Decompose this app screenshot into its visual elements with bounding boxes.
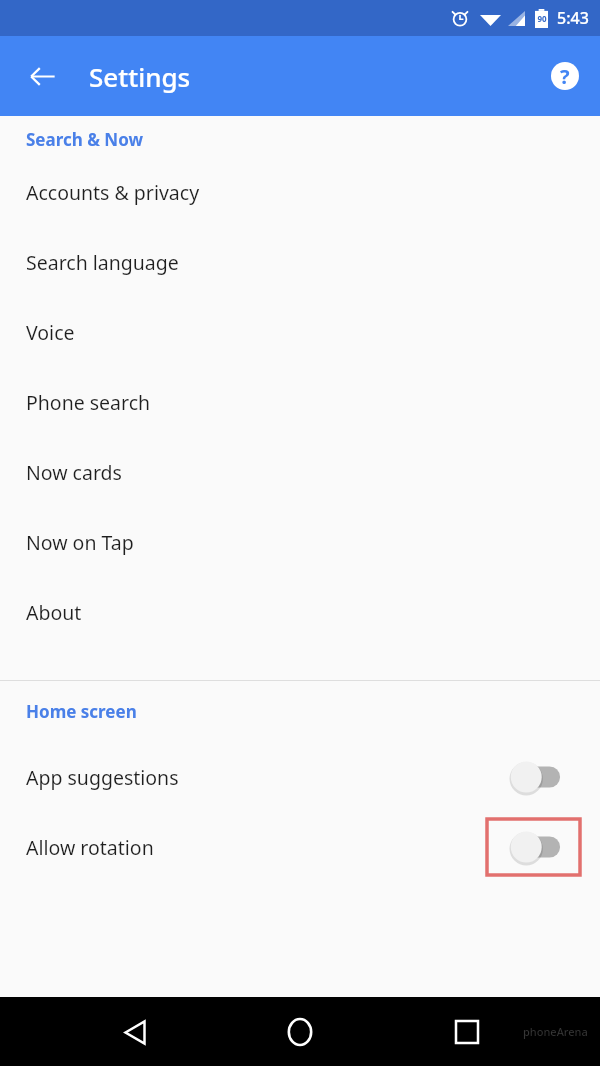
- button[interactable]: Back: [19, 53, 65, 99]
- button[interactable]: Voice: [0, 297, 600, 367]
- staticText: Search & Now: [26, 128, 144, 151]
- button[interactable]: Phone search: [0, 367, 600, 437]
- staticText: Voice: [26, 319, 75, 346]
- staticText: 5:43: [557, 7, 589, 29]
- staticText: Accounts & privacy: [26, 179, 200, 206]
- staticText: Settings: [89, 59, 191, 94]
- staticText: Now cards: [26, 459, 122, 486]
- button[interactable]: Allow rotation: [0, 812, 600, 882]
- staticText: 90: [537, 13, 547, 24]
- staticText: App suggestions: [26, 764, 179, 791]
- button[interactable]: Accounts & privacy: [0, 157, 600, 227]
- staticText: Search language: [26, 249, 179, 276]
- button[interactable]: About: [0, 577, 600, 647]
- button[interactable]: Search language: [0, 227, 600, 297]
- button[interactable]: Now cards: [0, 437, 600, 507]
- button[interactable]: Home: [277, 1009, 323, 1055]
- staticText: Home screen: [26, 700, 137, 723]
- staticText: ?: [560, 63, 570, 90]
- button[interactable]: Help: [543, 54, 587, 98]
- staticText: Allow rotation: [26, 834, 154, 861]
- button[interactable]: Recent apps: [444, 1009, 490, 1055]
- staticText: About: [26, 599, 82, 626]
- button[interactable]: Back: [112, 1009, 158, 1055]
- button[interactable]: App suggestions: [0, 742, 600, 812]
- staticText: Now on Tap: [26, 529, 134, 556]
- staticText: phoneArena: [523, 1024, 588, 1039]
- button[interactable]: Now on Tap: [0, 507, 600, 577]
- staticText: Phone search: [26, 389, 151, 416]
